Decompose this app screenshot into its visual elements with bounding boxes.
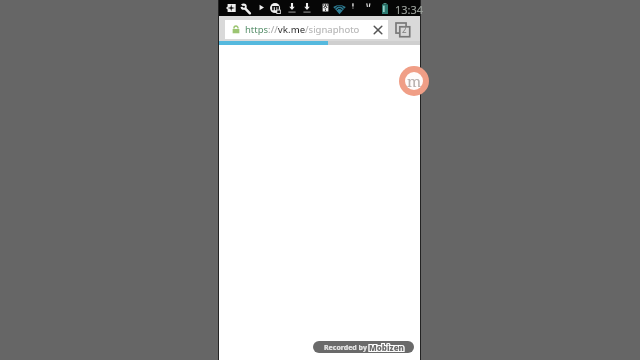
staticText: Mobizen [369,342,404,353]
staticText: m [407,71,422,91]
staticText: 2 [402,24,407,35]
button[interactable]: Stop loading [371,23,384,36]
staticText: Mobizen [369,342,404,353]
staticText: Recorded by [324,343,369,353]
staticText: 13:34 [395,2,424,17]
staticText: https://vk.me/signaphoto [245,23,360,36]
button[interactable]: Address bar [225,20,388,39]
button[interactable]: Tabs [391,18,415,42]
